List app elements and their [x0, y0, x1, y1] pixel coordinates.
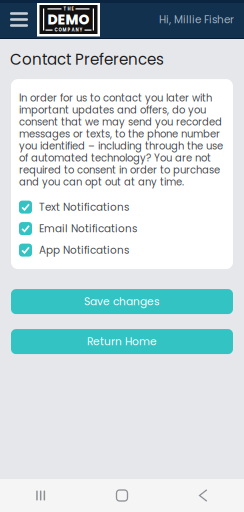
button[interactable]: Return Home	[11, 329, 233, 354]
staticText: Return Home	[87, 334, 157, 349]
staticText: C O M P A N Y	[54, 27, 82, 33]
button[interactable]: Recent apps	[0, 479, 81, 512]
staticText: T H E	[63, 6, 73, 12]
button[interactable]: Text Notifications	[19, 200, 225, 214]
staticText: App Notifications	[39, 243, 129, 257]
staticText: Text Notifications	[39, 200, 129, 214]
button[interactable]: Email Notifications	[19, 222, 225, 236]
staticText: Contact Preferences	[10, 49, 164, 70]
staticText: Hi, Millie Fisher	[159, 12, 234, 27]
button[interactable]: Back	[163, 479, 244, 512]
staticText: In order for us to contact you later wit…	[19, 91, 223, 189]
button[interactable]: Save changes	[11, 289, 233, 314]
button[interactable]: Home	[81, 479, 163, 512]
button[interactable]: App Notifications	[19, 243, 225, 257]
staticText: Save changes	[84, 294, 160, 309]
staticText: Email Notifications	[39, 221, 137, 236]
staticText: DEMO	[47, 10, 89, 29]
button[interactable]: Open navigation menu	[5, 0, 33, 38]
